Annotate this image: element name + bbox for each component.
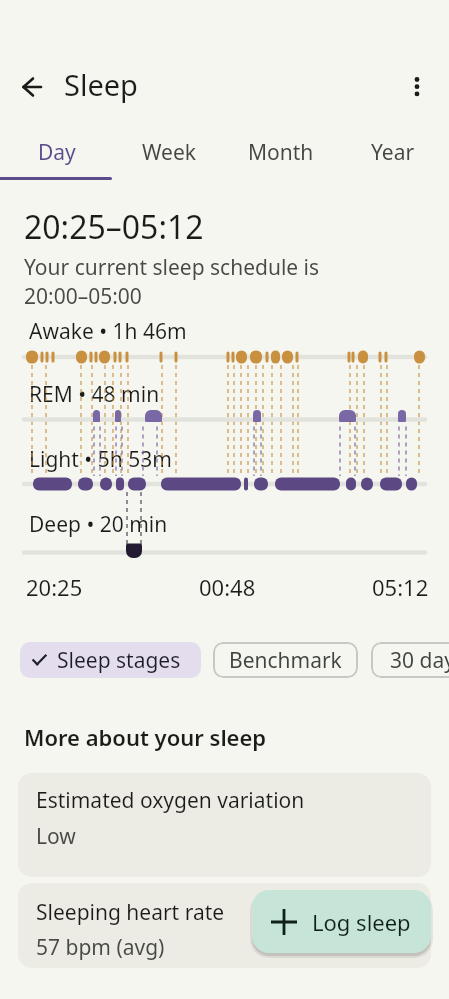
staticText: 30 day — [390, 646, 449, 675]
staticText: 20:00–05:00 — [24, 282, 142, 311]
button[interactable] — [395, 65, 439, 109]
staticText: Benchmark — [229, 646, 342, 675]
button[interactable]: Estimated oxygen variation — [18, 773, 431, 877]
staticText: Low — [36, 822, 76, 851]
staticText: REM • 48 min — [29, 380, 160, 409]
staticText: Sleep stages — [57, 646, 181, 675]
staticText: Week — [142, 138, 197, 167]
staticText: Light • 5h 53m — [29, 445, 172, 474]
button[interactable]: Week — [113, 127, 225, 177]
staticText: 20:25–05:12 — [24, 205, 204, 249]
button[interactable]: Benchmark — [213, 642, 358, 678]
staticText: Sleeping heart rate — [36, 898, 225, 927]
staticText: 05:12 — [372, 572, 429, 602]
staticText: 00:48 — [199, 572, 256, 602]
button[interactable]: Log sleep — [252, 890, 431, 953]
staticText: Awake • 1h 46m — [29, 317, 187, 346]
staticText: Year — [371, 138, 415, 167]
staticText: 57 bpm (avg) — [36, 933, 165, 962]
button[interactable]: Month — [225, 127, 337, 177]
button[interactable]: Sleeping heart rate — [18, 883, 431, 968]
staticText: Deep • 20 min — [29, 510, 168, 539]
staticText: Sleep — [64, 65, 138, 104]
staticText: Day — [38, 138, 76, 167]
button[interactable]: Day — [0, 127, 113, 177]
button[interactable]: Sleep stages — [20, 642, 201, 678]
button[interactable]: 30 day — [371, 642, 449, 678]
staticText: Month — [248, 138, 314, 167]
staticText: Log sleep — [312, 907, 411, 937]
staticText: Your current sleep schedule is — [24, 253, 320, 282]
staticText: Estimated oxygen variation — [36, 786, 305, 815]
staticText: 20:25 — [26, 572, 83, 602]
button[interactable] — [12, 76, 56, 120]
staticText: More about your sleep — [24, 722, 267, 752]
button[interactable]: Year — [337, 127, 449, 177]
